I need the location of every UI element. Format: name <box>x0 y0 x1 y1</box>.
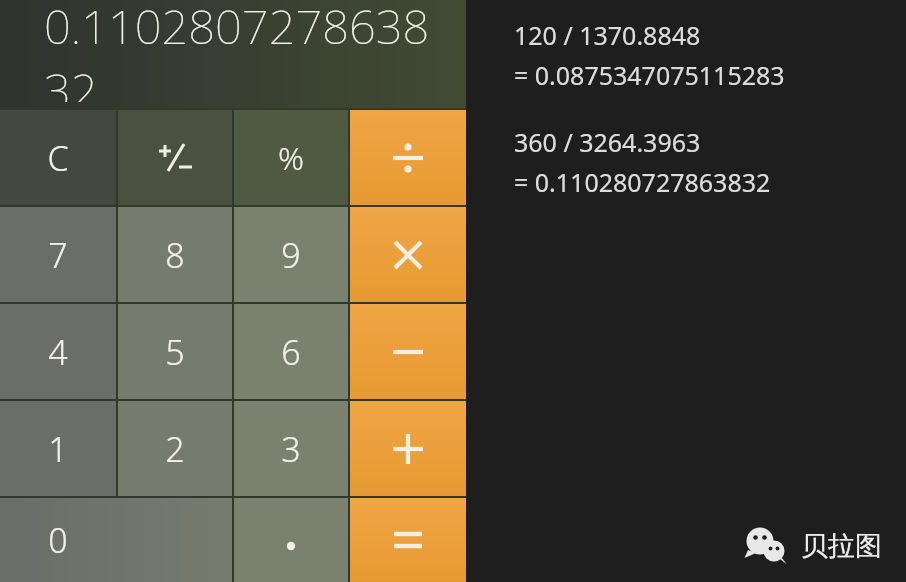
button[interactable]: C <box>0 110 116 205</box>
staticText: 贝拉图 <box>801 529 882 563</box>
button[interactable]: 9 <box>234 207 348 302</box>
staticText: 0.110280727863832 <box>44 0 440 102</box>
button[interactable]: Multiply <box>350 207 466 302</box>
button[interactable]: 5 <box>118 304 232 399</box>
button[interactable]: Plus minus <box>118 110 232 205</box>
staticText: 4 <box>48 329 68 375</box>
button[interactable]: 4 <box>0 304 116 399</box>
staticText: 9 <box>281 232 301 278</box>
button[interactable]: 1 <box>0 401 116 496</box>
button[interactable]: 2 <box>118 401 232 496</box>
staticText: 3 <box>281 426 301 472</box>
button[interactable]: 6 <box>234 304 348 399</box>
button[interactable]: 3 <box>234 401 348 496</box>
button[interactable]: % <box>234 110 348 205</box>
button[interactable]: 0 <box>0 498 232 582</box>
button[interactable]: Add <box>350 401 466 496</box>
staticText: = 0.0875347075115283 <box>514 58 785 92</box>
staticText: 0 <box>48 517 68 563</box>
staticText: C <box>47 135 69 181</box>
staticText: 7 <box>48 232 68 278</box>
staticText: 120 / 1370.8848 <box>514 18 701 52</box>
button[interactable]: 8 <box>118 207 232 302</box>
button[interactable]: Decimal point <box>234 498 348 582</box>
staticText: 6 <box>281 329 301 375</box>
button[interactable]: 7 <box>0 207 116 302</box>
staticText: 2 <box>165 426 185 472</box>
button[interactable]: Divide <box>350 110 466 205</box>
button[interactable]: Subtract <box>350 304 466 399</box>
staticText: % <box>278 136 304 180</box>
staticText: 8 <box>165 232 185 278</box>
staticText: 360 / 3264.3963 <box>514 125 701 159</box>
staticText: = 0.110280727863832 <box>514 165 771 199</box>
staticText: 5 <box>165 329 185 375</box>
button[interactable]: Equals <box>350 498 466 582</box>
staticText: 1 <box>48 426 68 472</box>
